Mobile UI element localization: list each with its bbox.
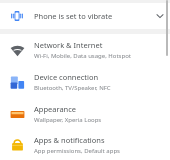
- button[interactable]: Apps & notifications: [0, 130, 170, 160]
- staticText: Wi-Fi, Mobile, Data usage, Hotspot: [34, 52, 131, 60]
- button[interactable]: Appearance: [0, 98, 170, 130]
- staticText: Wallpaper, Xperia Loops: [34, 116, 102, 124]
- button[interactable]: Phone is set to vibrate: [0, 3, 170, 29]
- staticText: Phone is set to vibrate: [34, 11, 150, 21]
- staticText: Appearance: [34, 104, 77, 114]
- button[interactable]: Network & Internet: [0, 34, 170, 66]
- staticText: Device connection: [34, 72, 99, 82]
- staticText: App permissions, Default apps: [34, 147, 120, 155]
- staticText: Bluetooth, TV/Speaker, NFC: [34, 84, 111, 92]
- button[interactable]: Expand: [150, 6, 170, 26]
- button[interactable]: Device connection: [0, 66, 170, 98]
- staticText: Apps & notifications: [34, 135, 105, 145]
- staticText: Network & Internet: [34, 40, 103, 50]
